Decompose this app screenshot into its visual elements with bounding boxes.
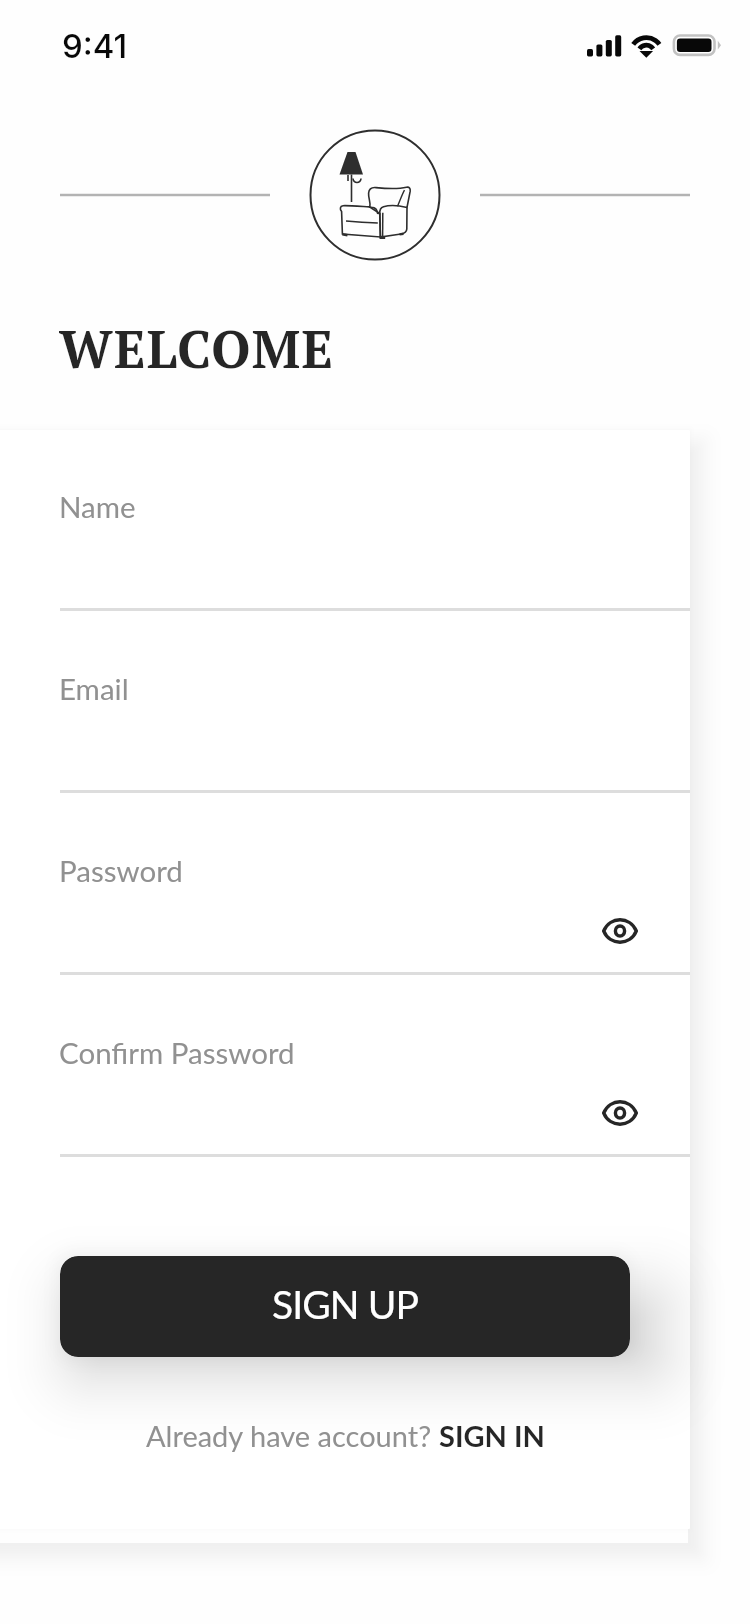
staticText: 9:41 (62, 26, 128, 66)
staticText: Confirm Password (59, 1035, 295, 1070)
button[interactable]: SIGN UP (60, 1256, 630, 1357)
button[interactable]: Email (59, 671, 630, 789)
staticText: WELCOME (59, 314, 335, 383)
button[interactable]: Confirm Password (59, 1035, 630, 1153)
staticText: Password (59, 853, 183, 888)
staticText: Email (59, 671, 129, 706)
staticText: Already have account? (146, 1418, 439, 1453)
staticText: Name (59, 489, 136, 524)
staticText: SIGN UP (272, 1281, 419, 1328)
button[interactable]: Password (59, 853, 630, 971)
staticText: SIGN IN (439, 1418, 545, 1453)
button[interactable]: Show password (595, 906, 645, 956)
button[interactable]: Name (59, 489, 630, 607)
button[interactable]: Show password (595, 1088, 645, 1138)
button[interactable]: SIGN IN (439, 1418, 545, 1453)
